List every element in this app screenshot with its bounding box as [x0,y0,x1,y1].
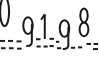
button[interactable]: Numeric readout fragment [0,0,100,64]
